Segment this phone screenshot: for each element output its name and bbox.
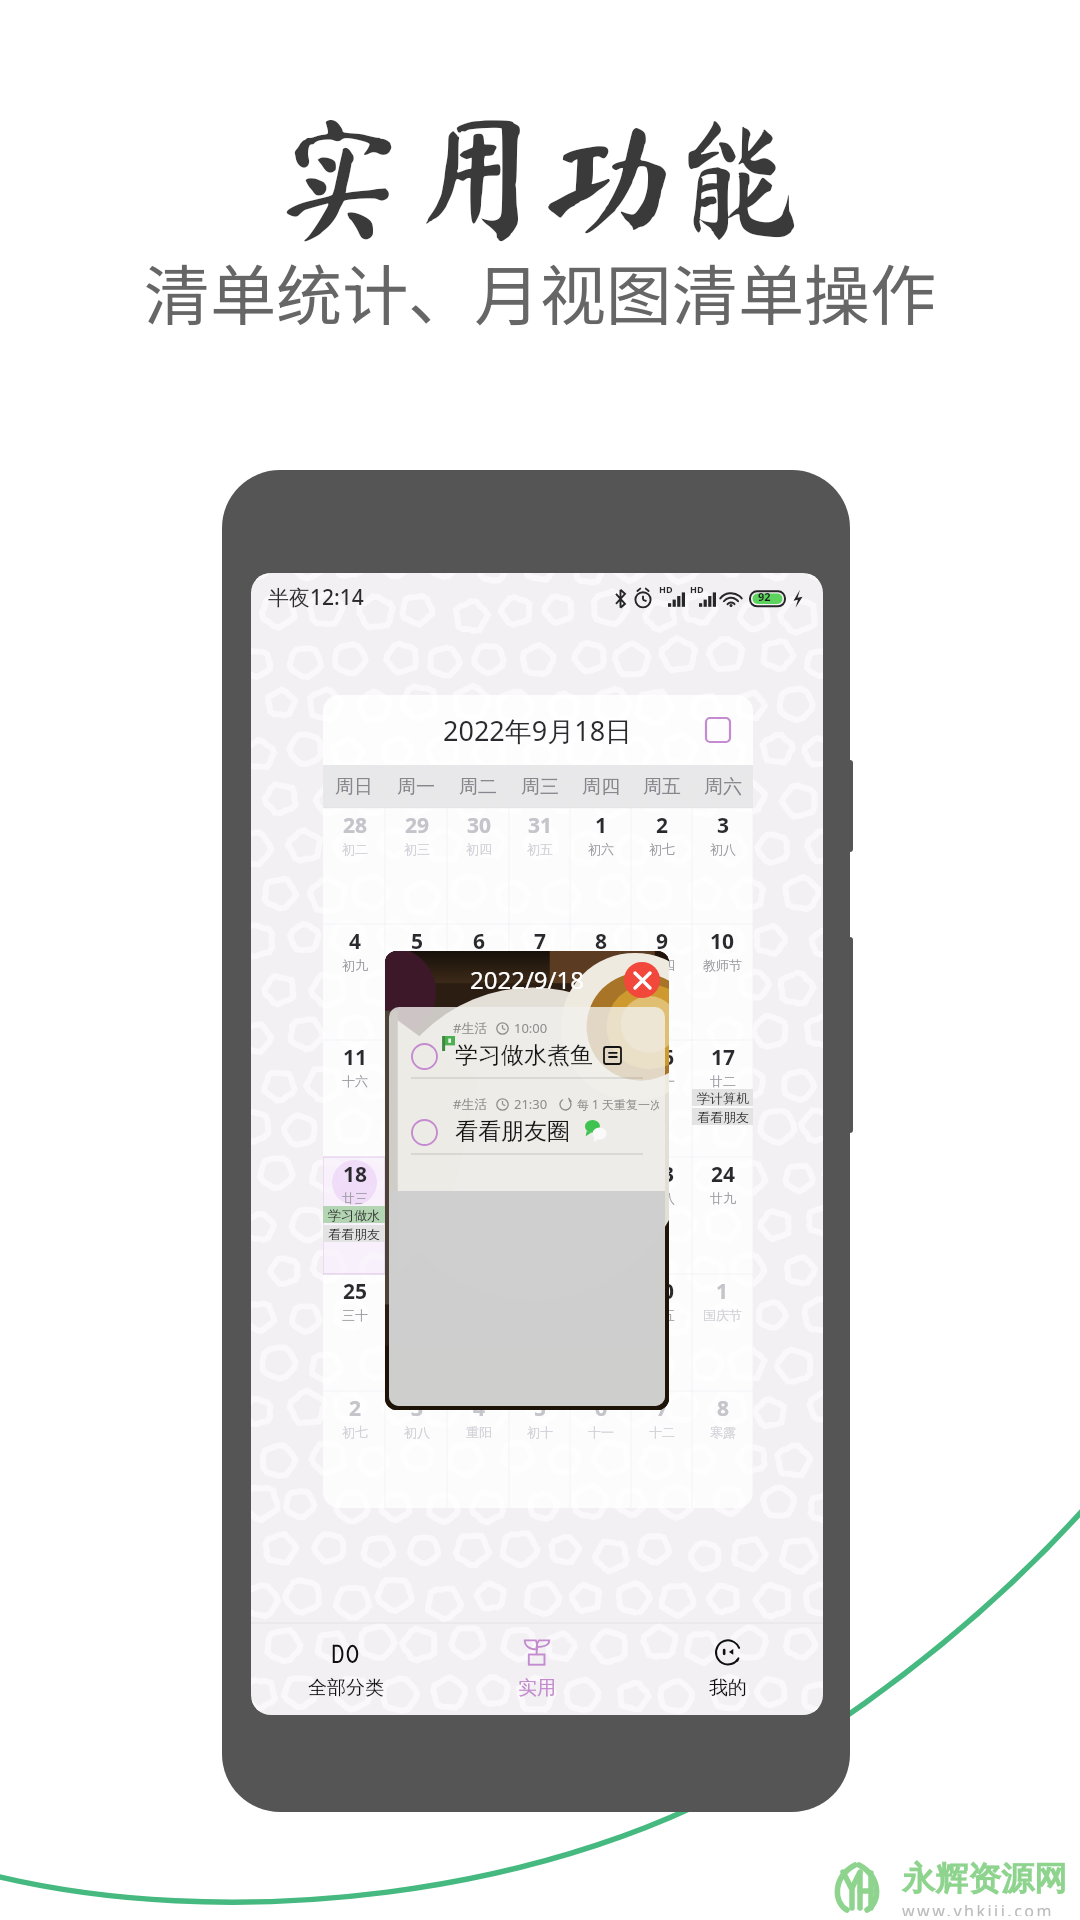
staticText: 十九 — [527, 1073, 553, 1088]
staticText: 7 — [656, 1394, 669, 1423]
button[interactable]: 22 — [570, 1157, 631, 1274]
button[interactable]: 5 — [385, 924, 447, 1040]
button[interactable]: 20 — [447, 1157, 509, 1274]
staticText: 6 — [595, 1394, 608, 1423]
button[interactable]: 全部分类 — [251, 1623, 441, 1715]
button[interactable]: 我的 — [632, 1623, 823, 1715]
staticText: 看看朋友圈 — [455, 1117, 570, 1146]
staticText: 看看朋友 — [697, 1109, 749, 1125]
button[interactable]: 25 — [323, 1274, 385, 1391]
staticText: 18 — [343, 1160, 368, 1189]
button[interactable]: 16 — [631, 1040, 692, 1157]
staticText: 10 — [710, 927, 735, 956]
staticText: 7 — [534, 927, 547, 956]
button[interactable]: 18 — [323, 1157, 385, 1274]
staticText: 廿八 — [649, 1190, 675, 1205]
staticText: 10:00 — [514, 1019, 548, 1037]
button[interactable]: 26 — [385, 1274, 447, 1391]
button[interactable]: 2 — [323, 1391, 385, 1508]
staticText: 周一 — [397, 775, 435, 799]
button[interactable]: 21 — [509, 1157, 570, 1274]
staticText: 周二 — [459, 775, 497, 799]
button[interactable]: 9 — [631, 924, 692, 1040]
button[interactable]: #生活 — [395, 1019, 659, 1078]
button[interactable]: 10 — [692, 924, 753, 1040]
button[interactable]: 30 — [447, 808, 509, 924]
button[interactable]: 5 — [509, 1391, 570, 1508]
button[interactable]: 29 — [385, 808, 447, 924]
staticText: 十四 — [649, 957, 675, 972]
staticText: 廿一 — [649, 1073, 675, 1088]
staticText: 十一 — [466, 957, 492, 972]
staticText: 看看朋友 — [328, 1226, 380, 1242]
staticText: 国庆节 — [703, 1307, 742, 1322]
button[interactable]: 7 — [509, 924, 570, 1040]
staticText: 学习做水煮鱼 — [455, 1041, 593, 1070]
staticText: 初三 — [404, 841, 430, 856]
staticText: #生活 — [453, 1019, 488, 1037]
staticText: 初七 — [649, 841, 675, 856]
staticText: 廿五 — [466, 1190, 492, 1205]
button[interactable]: 19 — [385, 1157, 447, 1274]
staticText: 16 — [650, 1043, 675, 1072]
button[interactable]: 14 — [509, 1040, 570, 1157]
staticText: 永辉资源网 — [902, 1858, 1067, 1900]
staticText: 十一 — [588, 1424, 614, 1439]
button[interactable]: 6 — [447, 924, 509, 1040]
button[interactable]: 2 — [631, 808, 692, 924]
button[interactable]: 31 — [509, 808, 570, 924]
staticText: 5 — [411, 927, 424, 956]
staticText: 24 — [711, 1160, 736, 1189]
button[interactable]: 7 — [631, 1391, 692, 1508]
staticText: 廿六 — [527, 1190, 553, 1205]
staticText: 2022年9月18日 — [443, 712, 633, 749]
button[interactable]: 8 — [692, 1391, 753, 1508]
staticText: HD — [659, 583, 673, 595]
button[interactable]: 30 — [631, 1274, 692, 1391]
staticText: 周三 — [521, 775, 559, 799]
button[interactable]: 实用 — [441, 1623, 632, 1715]
button[interactable]: 17 — [692, 1040, 753, 1157]
button[interactable]: 3 — [385, 1391, 447, 1508]
staticText: 全部分类 — [308, 1676, 384, 1700]
button[interactable]: 23 — [631, 1157, 692, 1274]
staticText: 周四 — [582, 775, 620, 799]
staticText: 12 — [405, 1043, 430, 1072]
button[interactable]: 1 — [692, 1274, 753, 1391]
button[interactable]: 13 — [447, 1040, 509, 1157]
staticText: 实用功能 — [272, 110, 809, 244]
button[interactable]: 6 — [570, 1391, 631, 1508]
button[interactable]: 12 — [385, 1040, 447, 1157]
button[interactable]: 11 — [323, 1040, 385, 1157]
staticText: 30 — [650, 1277, 675, 1306]
staticText: 白露 — [588, 957, 614, 972]
button[interactable]: 15 — [570, 1040, 631, 1157]
button[interactable]: 4 — [447, 1391, 509, 1508]
staticText: 秋分 — [588, 1190, 614, 1205]
staticText: 实用 — [518, 1676, 556, 1700]
button[interactable]: 8 — [570, 924, 631, 1040]
staticText: 30 — [467, 811, 492, 840]
button[interactable]: Select — [705, 717, 731, 743]
button[interactable]: #生活 — [395, 1095, 659, 1154]
button[interactable]: 1 — [570, 808, 631, 924]
staticText: 廿三 — [342, 1190, 368, 1205]
staticText: 十二 — [527, 957, 553, 972]
staticText: 3 — [411, 1394, 424, 1423]
staticText: 21:30 — [514, 1095, 548, 1113]
staticText: 寒露 — [710, 1424, 736, 1439]
button[interactable]: 28 — [323, 808, 385, 924]
button[interactable]: Close — [624, 962, 660, 998]
staticText: 初十 — [527, 1424, 553, 1439]
button[interactable]: 3 — [692, 808, 753, 924]
button[interactable]: 24 — [692, 1157, 753, 1274]
button[interactable]: 4 — [323, 924, 385, 1040]
